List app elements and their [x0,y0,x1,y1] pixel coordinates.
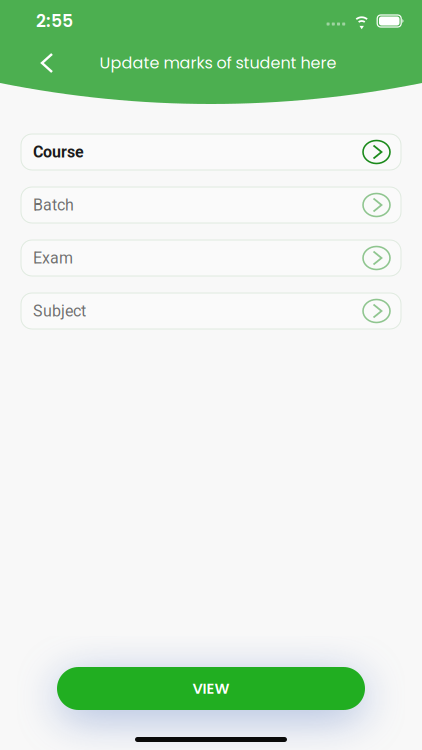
button[interactable]: Batch [21,187,401,223]
button[interactable]: VIEW [57,667,365,710]
staticText: Batch [33,196,74,214]
staticText: Subject [33,302,86,320]
button[interactable]: Exam [21,240,401,276]
staticText: Exam [33,249,73,267]
staticText: Update marks of student here [99,52,336,74]
staticText: 2:55 [36,9,73,33]
staticText: VIEW [192,678,229,699]
button[interactable]: Subject [21,293,401,329]
button[interactable]: Back [31,43,63,83]
staticText: Course [33,143,84,161]
button[interactable]: Course [21,134,401,170]
